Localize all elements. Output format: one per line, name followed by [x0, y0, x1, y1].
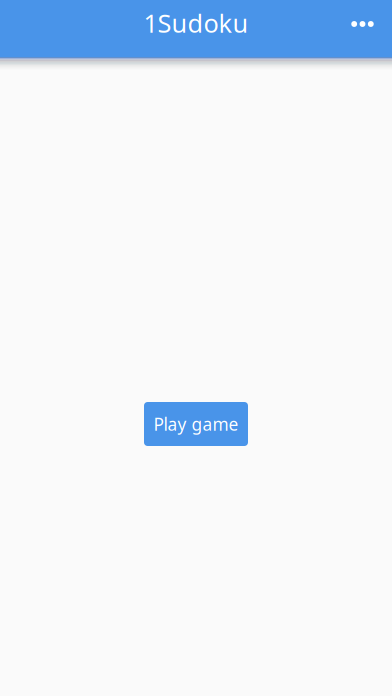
button[interactable]: More options — [333, 0, 392, 46]
staticText: 1Sudoku — [143, 6, 248, 40]
button[interactable]: Play game — [144, 402, 248, 446]
staticText: Play game — [153, 412, 238, 435]
